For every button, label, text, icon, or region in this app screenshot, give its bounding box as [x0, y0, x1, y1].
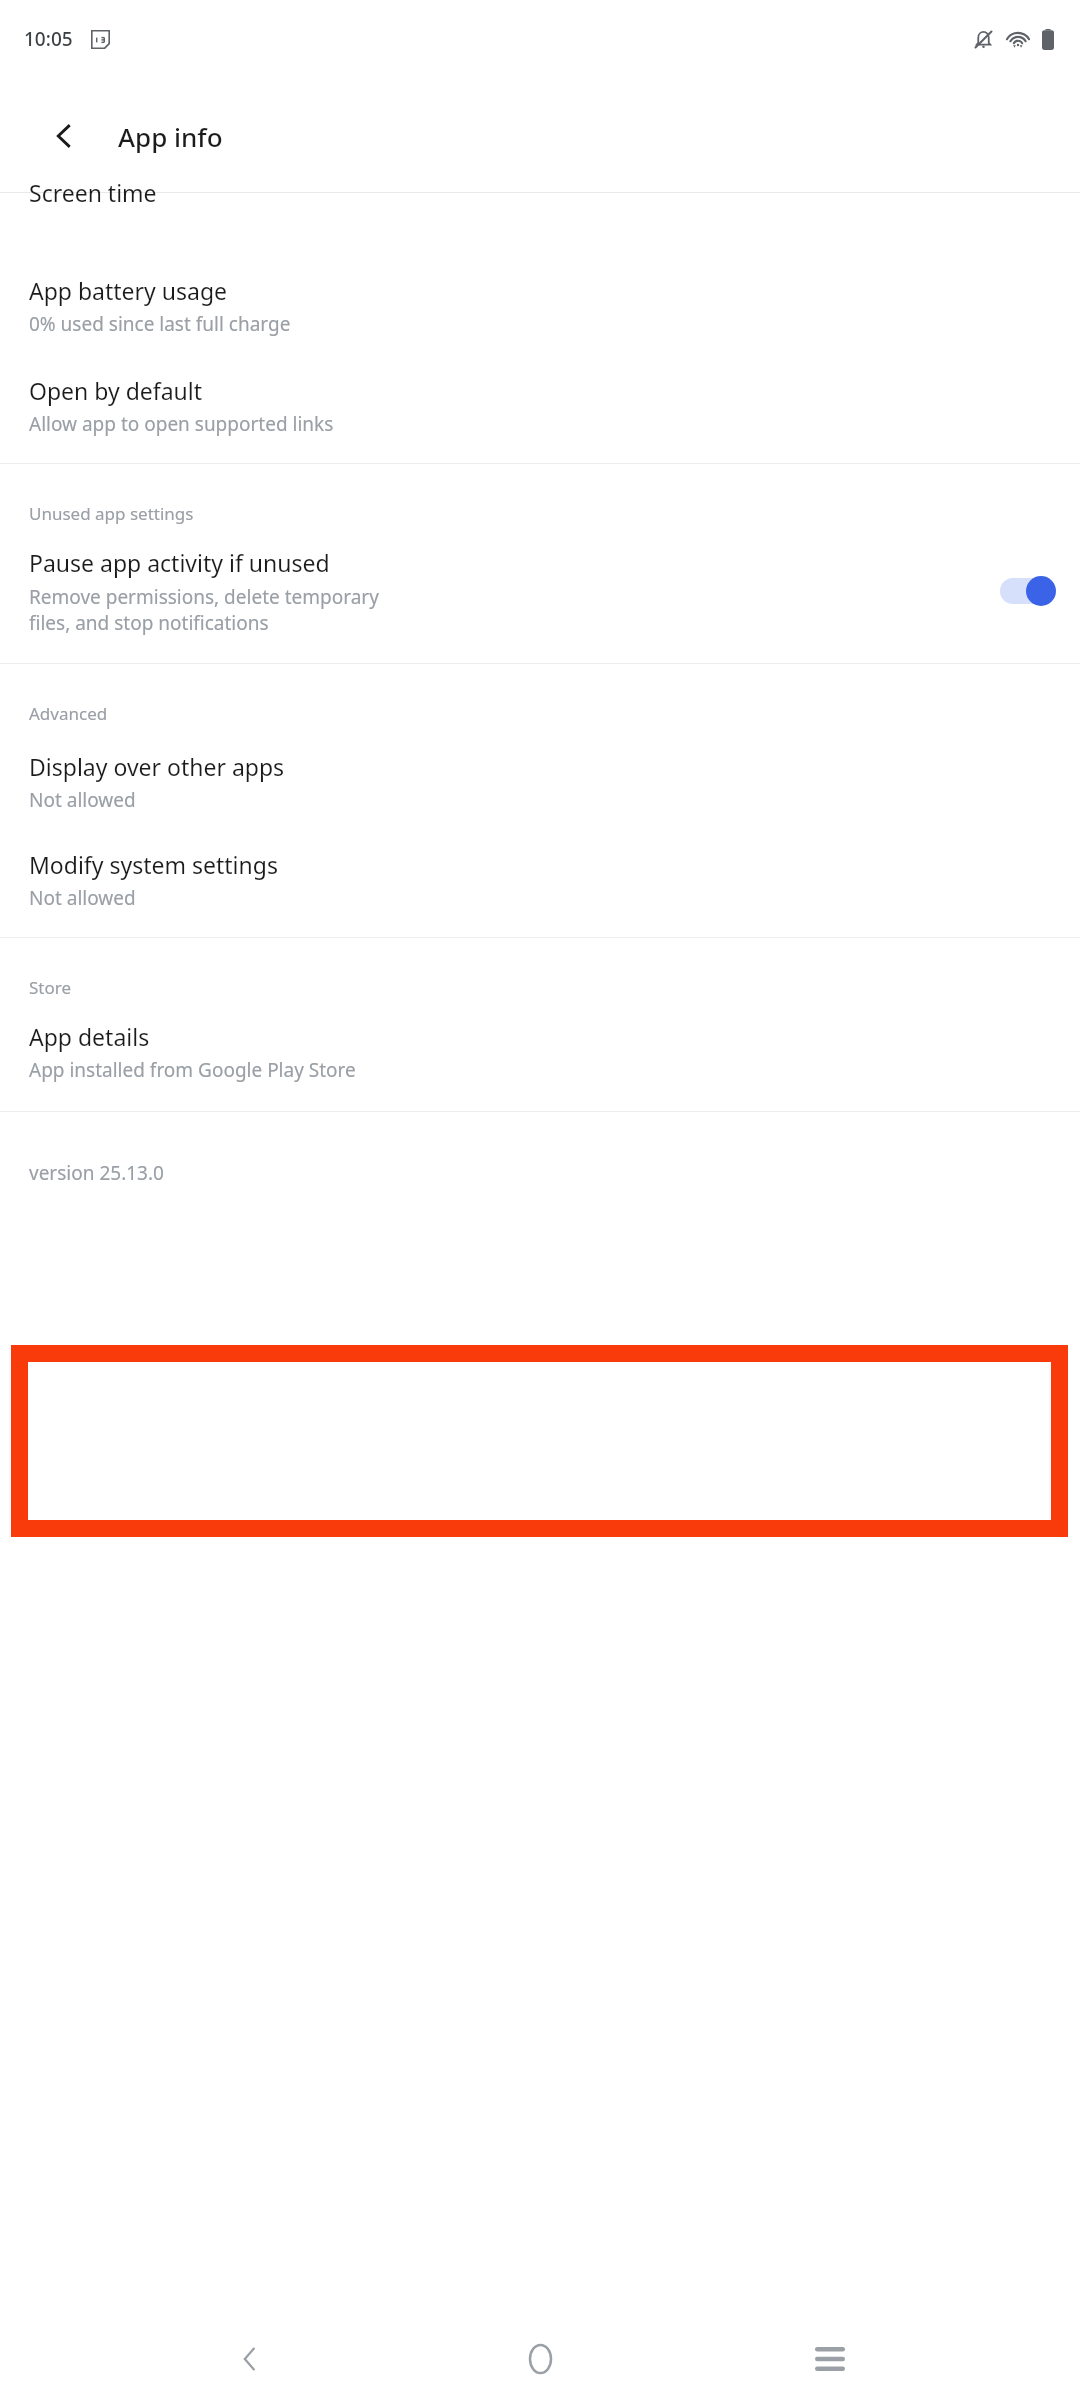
button[interactable]: Back [210, 2319, 290, 2399]
button[interactable]: Recent apps [790, 2319, 870, 2399]
button[interactable]: Pause app activity if unused [0, 533, 1080, 663]
button[interactable]: Display over other apps [0, 733, 1080, 835]
staticText: Modify system settings [29, 849, 278, 880]
staticText: 0% used since last full charge [29, 311, 291, 337]
staticText: 10:05 [24, 26, 73, 52]
button[interactable]: Open by default [0, 361, 1080, 463]
staticText: Advanced [29, 702, 108, 725]
staticText: Open by default [29, 375, 203, 406]
button[interactable]: Home [500, 2319, 580, 2399]
button[interactable]: Modify system settings [0, 835, 1080, 937]
staticText: Display over other apps [29, 751, 285, 782]
staticText: Screen time [29, 177, 157, 207]
staticText: Store [29, 976, 72, 999]
staticText: Not allowed [29, 787, 136, 813]
button[interactable]: App details [0, 1007, 1080, 1111]
button[interactable]: Back [28, 100, 100, 172]
staticText: Allow app to open supported links [29, 411, 334, 437]
staticText: App battery usage [29, 275, 228, 306]
staticText: Not allowed [29, 885, 136, 911]
staticText: App installed from Google Play Store [29, 1057, 356, 1083]
staticText: Unused app settings [29, 502, 194, 525]
staticText: App info [118, 119, 223, 154]
staticText: App details [29, 1021, 150, 1052]
button[interactable]: App battery usage [0, 275, 1080, 361]
staticText: Remove permissions, delete temporary fil… [29, 584, 379, 635]
staticText: version 25.13.0 [29, 1160, 164, 1186]
staticText: Pause app activity if unused [29, 547, 330, 578]
